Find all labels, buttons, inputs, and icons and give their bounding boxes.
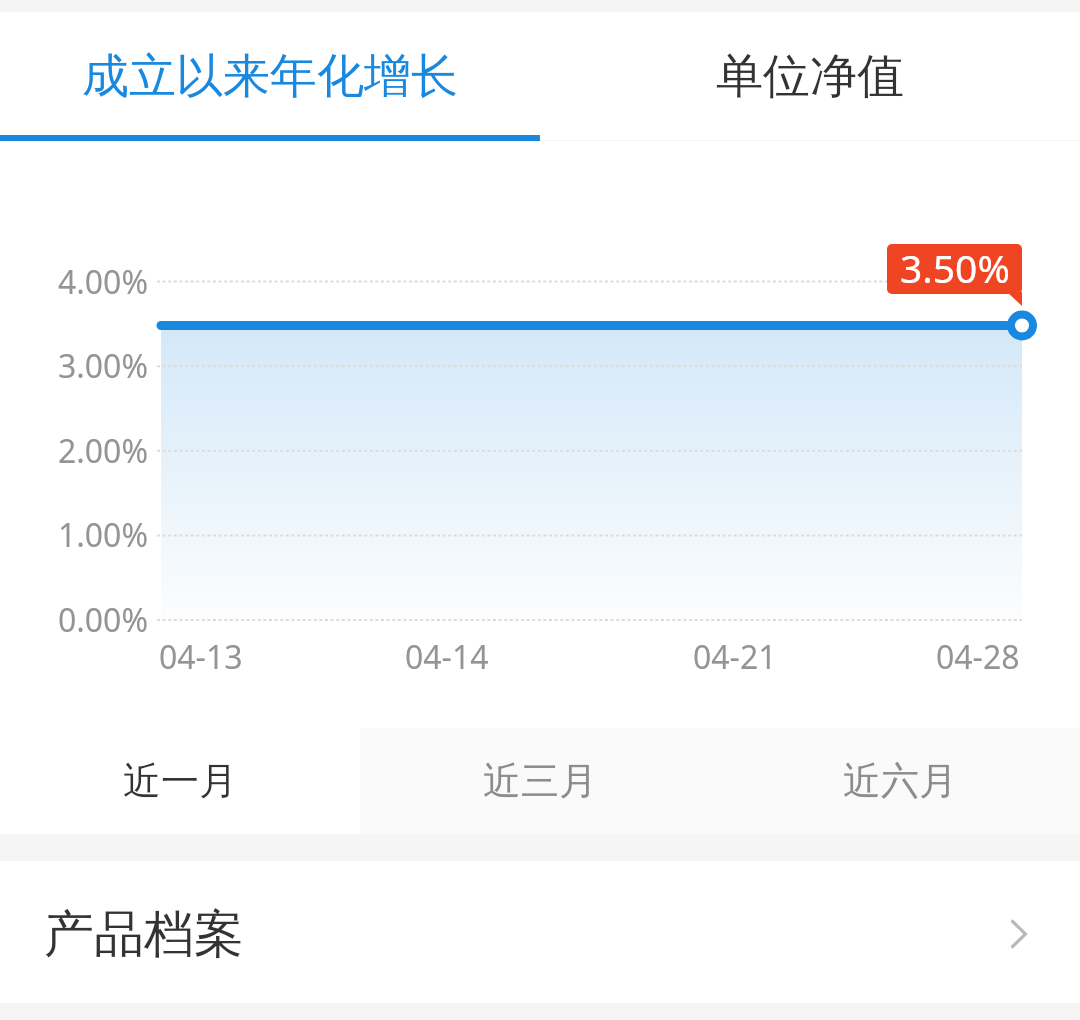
button[interactable]: 近三月 — [360, 728, 720, 834]
staticText: 1.00% — [57, 513, 148, 557]
staticText: 3.50% — [900, 244, 1010, 291]
staticText: 近三月 — [483, 757, 597, 805]
staticText: 成立以来年化增长 — [82, 47, 458, 106]
staticText: 单位净值 — [716, 47, 904, 106]
staticText: 近一月 — [123, 757, 237, 805]
staticText: 04-14 — [405, 635, 489, 679]
staticText: 2.00% — [57, 429, 148, 473]
button[interactable]: 近一月 — [0, 728, 360, 834]
staticText: 04-28 — [936, 635, 1020, 679]
other: 打开产品档案 — [988, 902, 1048, 962]
staticText: 0.00% — [57, 598, 148, 642]
staticText: 近六月 — [843, 757, 957, 805]
staticText: 产品档案 — [44, 903, 244, 966]
staticText: 3.00% — [57, 344, 148, 388]
button[interactable]: 产品档案 — [0, 861, 1080, 1003]
button[interactable]: 单位净值 — [540, 12, 1080, 141]
button[interactable]: 成立以来年化增长 — [0, 12, 540, 141]
button[interactable]: 近六月 — [720, 728, 1080, 834]
staticText: 04-13 — [159, 635, 243, 679]
staticText: 4.00% — [57, 260, 148, 304]
staticText: 04-21 — [693, 635, 777, 679]
